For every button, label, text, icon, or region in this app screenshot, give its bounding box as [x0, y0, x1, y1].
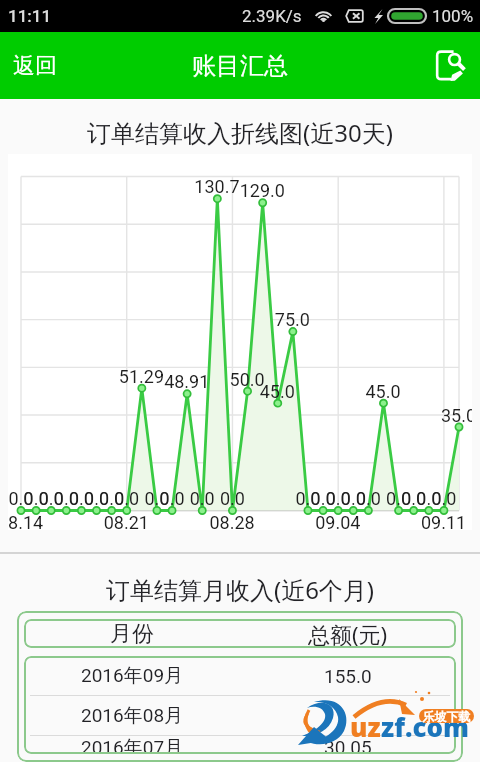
button[interactable]: 2016年08月	[24, 696, 456, 735]
button[interactable]: 返回	[0, 32, 70, 99]
staticText: 总额(元)	[308, 619, 388, 648]
button[interactable]: 账单查询	[421, 32, 480, 99]
staticText: 2016年09月	[81, 664, 184, 688]
staticText: 30.05	[324, 736, 372, 754]
staticText: 100%	[432, 6, 474, 26]
staticText: 2016年08月	[81, 704, 184, 728]
staticText: 月份	[110, 620, 154, 648]
button[interactable]: 2016年09月	[24, 656, 456, 695]
button[interactable]: 2016年07月	[24, 736, 456, 754]
staticText: 账目汇总	[192, 51, 288, 81]
staticText: 订单结算收入折线图(近30天)	[0, 116, 480, 149]
staticText: 订单结算月收入(近6个月)	[0, 573, 480, 606]
staticText: 2016年07月	[81, 736, 184, 754]
staticText: 返回	[13, 52, 57, 80]
staticText: 11:11	[8, 6, 52, 26]
staticText: 155.0	[324, 665, 372, 687]
staticText: 2.39K/s	[242, 6, 302, 26]
